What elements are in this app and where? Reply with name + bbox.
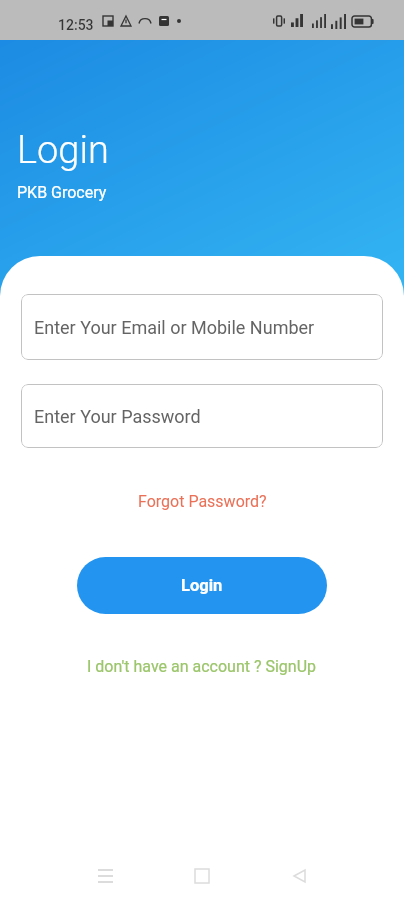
button[interactable]: Back [275,852,323,900]
button[interactable]: I don't have an account ? SignUp [81,651,323,682]
staticText: 12:53 [58,17,94,33]
button[interactable]: Enter Your Email or Mobile Number [21,294,383,360]
button[interactable]: Home [178,852,226,900]
staticText: Enter Your Email or Mobile Number [34,317,315,338]
button[interactable]: Login [77,557,327,614]
staticText: I don't have an account ? SignUp [87,657,317,676]
staticText: Forgot Password? [138,492,267,511]
staticText: Login [181,576,223,595]
staticText: PKB Grocery [17,183,107,202]
staticText: Enter Your Password [34,406,201,427]
button[interactable]: Enter Your Password [21,384,383,448]
staticText: Login [17,128,109,173]
button[interactable]: Recent apps [81,852,129,900]
button[interactable]: Forgot Password? [132,486,273,517]
